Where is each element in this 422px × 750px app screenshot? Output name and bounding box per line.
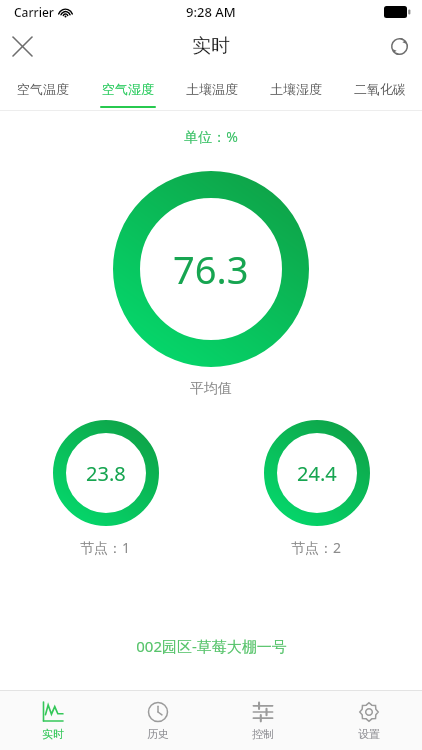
staticText: 节点：2 [291,538,342,557]
staticText: 控制 [252,727,274,741]
button[interactable]: 控制 [210,691,316,750]
staticText: 平均值 [190,380,232,398]
button[interactable]: 土壤温度 [170,68,254,110]
button[interactable]: 空气温度 [0,68,85,110]
button[interactable]: 土壤湿度 [254,68,338,110]
staticText: Carrier [14,4,54,20]
button[interactable]: Refresh [376,24,422,68]
staticText: 实时 [42,727,64,741]
staticText: 土壤湿度 [270,81,322,97]
button[interactable]: 历史 [105,691,210,750]
staticText: 空气湿度 [102,81,154,97]
button[interactable]: 设置 [316,691,422,750]
staticText: 9:28 AM [186,3,236,21]
staticText: 二氧化碳 [354,81,406,97]
button[interactable]: 实时 [0,691,105,750]
staticText: 24.4 [297,460,337,487]
staticText: 实时 [192,34,230,58]
button[interactable]: 二氧化碳 [338,68,422,110]
button[interactable]: Close [0,24,44,68]
staticText: 节点：1 [80,538,131,557]
staticText: 历史 [147,727,169,741]
staticText: 土壤温度 [186,81,238,97]
staticText: 空气温度 [17,81,69,97]
staticText: 单位：% [184,127,238,146]
button[interactable]: 24.4 [211,420,422,557]
staticText: 002园区-草莓大棚一号 [136,636,287,656]
staticText: 设置 [358,727,380,741]
button[interactable]: 空气湿度 [85,68,170,110]
button[interactable]: 23.8 [0,420,211,557]
staticText: 23.8 [86,460,126,487]
staticText: 76.3 [173,243,249,295]
